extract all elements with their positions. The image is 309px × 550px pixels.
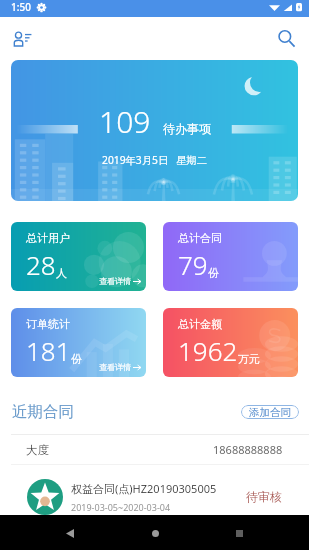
staticText: 109 [99,101,151,142]
button[interactable]: 总计用户 [11,222,146,291]
button[interactable]: 大度 [0,435,309,464]
staticText: 万元 [238,352,260,366]
button[interactable]: 总计金额 [163,308,298,377]
staticText: 近期合同 [12,402,74,422]
staticText: 订单统计 [26,317,70,331]
staticText: 待办事项 [163,121,211,136]
staticText: 79 [178,247,208,282]
button[interactable]: 109 [11,60,298,201]
button[interactable]: Back [55,518,85,548]
button[interactable]: Home [140,518,170,548]
button[interactable]: 总计合同 [163,222,298,291]
staticText: 2019年3月5日 星期二 [102,153,208,167]
staticText: 权益合同(点)HZ20190305005 [71,481,217,496]
button[interactable]: 添加合同 [241,405,299,419]
staticText: 查看详情 [99,362,131,372]
staticText: 1:50 [11,0,31,14]
staticText: 181 [26,333,71,368]
staticText: 人 [56,266,67,280]
staticText: 添加合同 [249,406,291,419]
button[interactable]: 订单统计 [11,308,146,377]
staticText: 查看详情 [99,276,131,286]
staticText: 总计金额 [178,317,222,331]
button[interactable]: Contacts [7,24,37,54]
button[interactable]: Recents [224,518,254,548]
button[interactable]: Search [272,24,302,54]
staticText: 28 [26,247,56,282]
button[interactable]: 权益合同(点)HZ20190305005 [0,465,309,528]
staticText: 18688888888 [213,442,283,457]
staticText: 份 [71,352,82,366]
staticText: 总计合同 [178,231,222,245]
staticText: 1962 [178,333,238,368]
staticText: 2019-03-05~2020-03-04 [71,501,171,513]
staticText: 总计用户 [26,231,70,245]
staticText: 大度 [26,443,49,457]
staticText: 份 [208,266,219,280]
staticText: 待审核 [246,489,282,504]
